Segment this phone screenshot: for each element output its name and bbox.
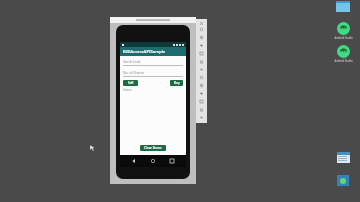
- button[interactable]: Stock Code: [123, 59, 183, 66]
- button[interactable]: Back: [129, 156, 139, 166]
- staticText: BSEAccessAPISample: [123, 49, 166, 55]
- staticText: Clear Items: [144, 146, 162, 150]
- staticText: Buy: [174, 81, 180, 85]
- button[interactable]: Close emulator toolbar: [196, 21, 207, 25]
- button[interactable]: Android Studio: [330, 22, 356, 40]
- button[interactable]: Emulator control 10: [196, 98, 207, 105]
- button[interactable]: Emulator control 11: [196, 106, 207, 113]
- button[interactable]: Android Studio preview: [330, 45, 356, 63]
- button[interactable]: Emulator control 12: [196, 114, 207, 121]
- button[interactable]: Clear Items: [140, 145, 166, 151]
- button[interactable]: Document: [330, 152, 356, 163]
- button[interactable]: Buy: [170, 80, 183, 86]
- button[interactable]: Emulator control 1: [196, 26, 207, 33]
- button[interactable]: Emulator control 9: [196, 90, 207, 97]
- button[interactable]: Recent apps: [167, 156, 177, 166]
- button[interactable]: Emulator control 2: [196, 34, 207, 41]
- button[interactable]: No. of Shares: [123, 70, 183, 77]
- staticText: Status: [123, 88, 132, 92]
- button[interactable]: Emulator control 4: [196, 50, 207, 57]
- staticText: No. of Shares: [123, 70, 145, 75]
- staticText: Android Studio: [334, 36, 353, 40]
- button[interactable]: Sell: [123, 80, 138, 86]
- button[interactable]: Emulator control 6: [196, 66, 207, 73]
- button[interactable]: Home: [148, 156, 158, 166]
- button[interactable]: Emulator control 7: [196, 74, 207, 81]
- staticText: Stock Code: [123, 59, 141, 64]
- button[interactable]: Emulator control 3: [196, 42, 207, 49]
- button[interactable]: Window shortcut: [330, 1, 356, 12]
- button[interactable]: Emulator control 8: [196, 82, 207, 89]
- button[interactable]: Emulator control 5: [196, 58, 207, 65]
- staticText: Android Studio: [334, 59, 353, 63]
- button[interactable]: Green document: [330, 175, 356, 186]
- staticText: Sell: [128, 81, 134, 85]
